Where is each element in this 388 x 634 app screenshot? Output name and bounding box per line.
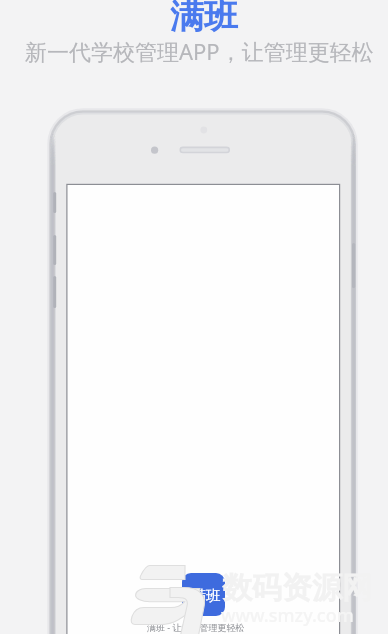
staticText: 新一代学校管理APP，让管理更轻松 bbox=[25, 36, 374, 66]
staticText: 满班 bbox=[191, 587, 221, 606]
button[interactable]: 满班 app icon bbox=[182, 573, 225, 616]
staticText: 满班 - 让学校管理更轻松 bbox=[147, 621, 245, 633]
button[interactable]: 满班 - 让学校管理更轻松 bbox=[146, 620, 262, 633]
staticText: 数码资源网 bbox=[222, 569, 372, 607]
staticText: www.smzy.com bbox=[221, 603, 354, 628]
staticText: 满班 bbox=[170, 0, 238, 38]
